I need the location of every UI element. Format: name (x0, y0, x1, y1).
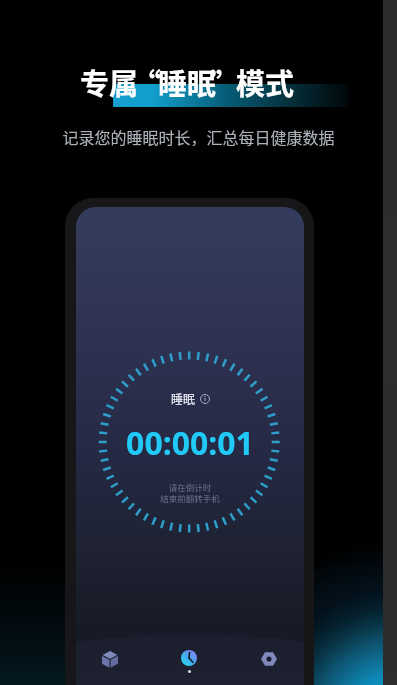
button[interactable]: Devices (85, 637, 135, 681)
staticText: 睡眠 (158, 61, 217, 103)
staticText: 专属 (80, 61, 139, 103)
button[interactable]: Timer (164, 637, 214, 681)
staticText: ” (210, 61, 240, 103)
staticText: “ (132, 61, 162, 103)
staticText: 00:00:01 (76, 421, 304, 465)
staticText: 记录您的睡眠时长，汇总每日健康数据 (0, 125, 397, 148)
staticText: 睡眠 (171, 390, 196, 407)
staticText: 模式 (236, 61, 295, 103)
staticText: 请在倒计时 结束前翻转手机 (76, 481, 304, 504)
button[interactable]: Settings (244, 637, 294, 681)
